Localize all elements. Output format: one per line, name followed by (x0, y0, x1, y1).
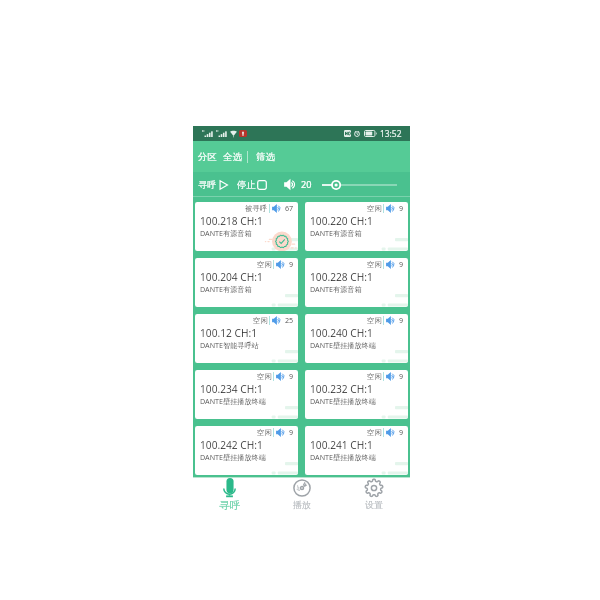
button[interactable]: 设置 (338, 478, 410, 511)
staticText: 100.220 CH:1 (310, 214, 373, 228)
staticText: 设置 (365, 499, 383, 510)
staticText: 100.234 CH:1 (200, 382, 263, 396)
staticText: 全选 (223, 151, 242, 163)
staticText: DANTE智能寻呼站 (200, 340, 259, 350)
staticText: 空闲 (253, 316, 268, 325)
button[interactable]: 空闲 (195, 258, 298, 307)
staticText: DANTE壁挂播放终端 (200, 452, 266, 462)
staticText: 寻呼 (219, 499, 241, 511)
staticText: 被寻呼 (245, 204, 268, 213)
staticText: 100.241 CH:1 (310, 438, 373, 452)
staticText: 空闲 (257, 428, 272, 437)
staticText: 空闲 (257, 372, 272, 381)
button[interactable]: 空闲 (195, 370, 298, 419)
button[interactable]: 空闲 (305, 202, 408, 251)
staticText: 100.240 CH:1 (310, 326, 373, 340)
button[interactable]: 寻呼 (198, 176, 228, 194)
staticText: DANTE有源音箱 (200, 284, 252, 294)
staticText: 空闲 (257, 260, 272, 269)
staticText: 100.218 CH:1 (200, 214, 263, 228)
staticText: 100.204 CH:1 (200, 270, 263, 284)
staticText: DANTE壁挂播放终端 (200, 396, 266, 406)
staticText: DANTE壁挂播放终端 (310, 452, 376, 462)
staticText: 13:52 (380, 128, 402, 139)
staticText: DANTE壁挂播放终端 (310, 396, 376, 406)
staticText: 9 (399, 315, 404, 325)
button[interactable]: Volume (284, 180, 296, 189)
staticText: 9 (289, 371, 294, 381)
staticText: 分区 (198, 151, 217, 163)
staticText: 100.12 CH:1 (200, 326, 258, 340)
staticText: 100.232 CH:1 (310, 382, 373, 396)
staticText: 空闲 (367, 260, 382, 269)
staticText: 播放 (293, 499, 311, 510)
staticText: DANTE壁挂播放终端 (310, 340, 376, 350)
staticText: 9 (289, 259, 294, 269)
staticText: 筛选 (256, 151, 275, 163)
button[interactable] (322, 178, 397, 192)
button[interactable]: 空闲 (305, 370, 408, 419)
button[interactable]: 空闲 (195, 426, 298, 475)
staticText: 空闲 (367, 316, 382, 325)
staticText: 67 (285, 203, 294, 213)
button[interactable]: 分区 (197, 148, 218, 166)
staticText: 空闲 (367, 204, 382, 213)
button[interactable]: 被寻呼 (195, 202, 298, 251)
staticText: DANTE有源音箱 (310, 228, 362, 238)
staticText: 空闲 (367, 372, 382, 381)
staticText: 100.242 CH:1 (200, 438, 263, 452)
staticText: DANTE有源音箱 (200, 228, 252, 238)
staticText: 寻呼 (198, 179, 217, 191)
staticText: 9 (399, 371, 404, 381)
staticText: DANTE有源音箱 (310, 284, 362, 294)
staticText: 9 (289, 427, 294, 437)
button[interactable]: 筛选 (255, 148, 276, 166)
staticText: 100.228 CH:1 (310, 270, 373, 284)
button[interactable]: 停止 (237, 176, 267, 194)
staticText: 25 (285, 315, 294, 325)
button[interactable]: 播放 (266, 478, 338, 511)
button[interactable]: 空闲 (305, 426, 408, 475)
staticText: 20 (301, 178, 312, 191)
button[interactable]: 寻呼 (193, 478, 266, 511)
staticText: 9 (399, 203, 404, 213)
button[interactable]: 空闲 (305, 314, 408, 363)
button[interactable]: 全选 (222, 148, 243, 166)
button[interactable]: 空闲 (195, 314, 298, 363)
staticText: 停止 (237, 179, 256, 191)
button[interactable]: 空闲 (305, 258, 408, 307)
staticText: 9 (399, 259, 404, 269)
staticText: 空闲 (367, 428, 382, 437)
staticText: 9 (399, 427, 404, 437)
